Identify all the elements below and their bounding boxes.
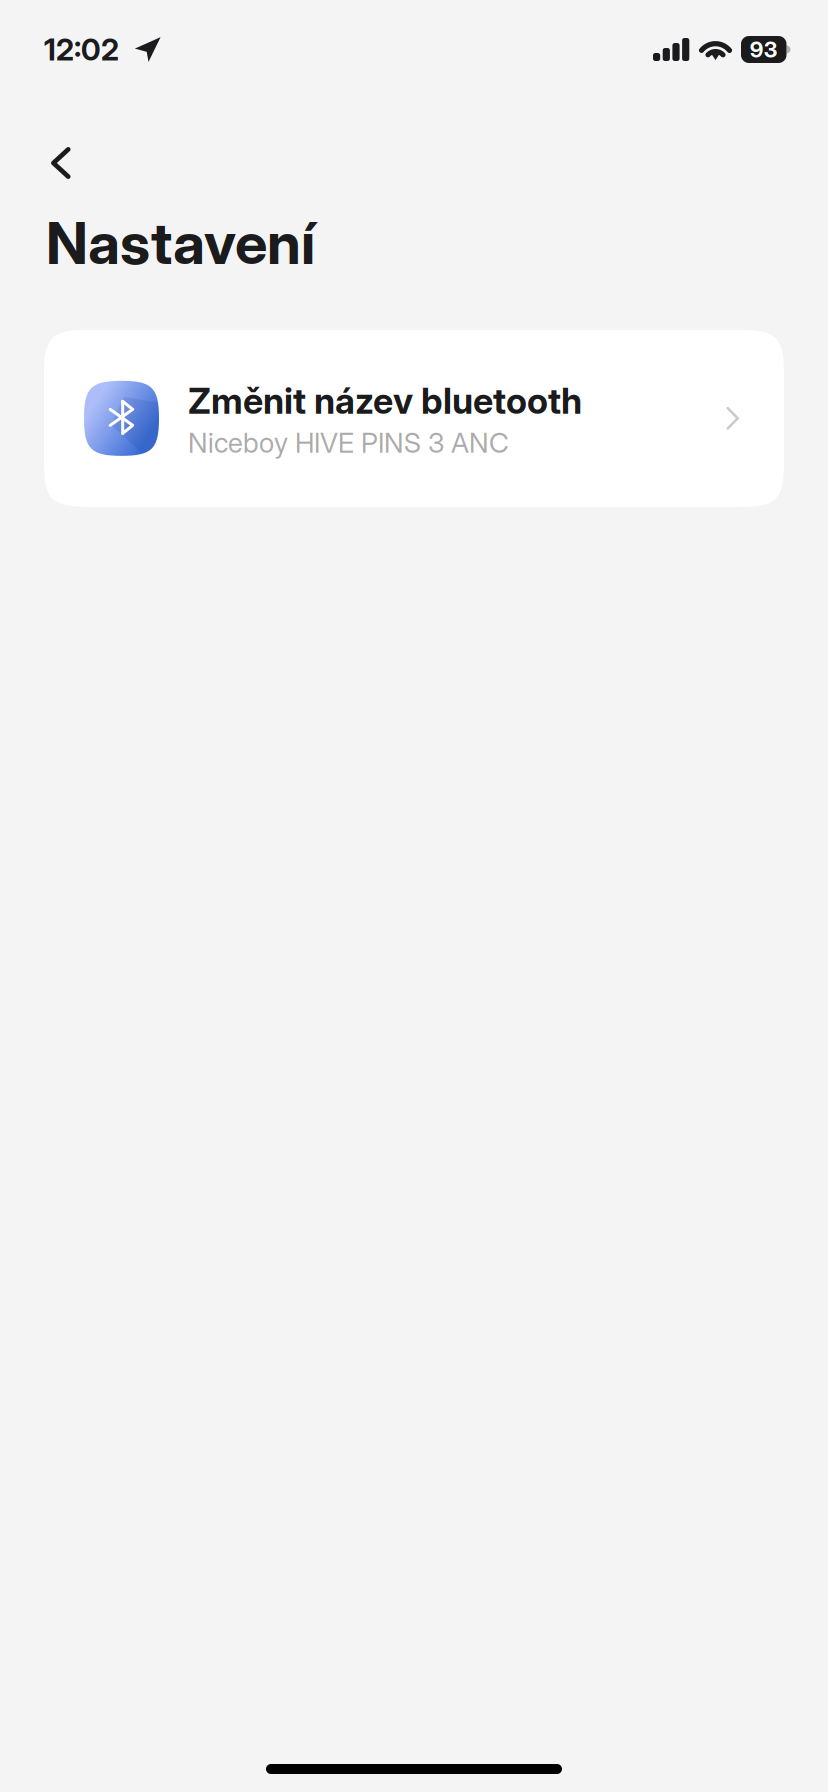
- staticText: 12:02: [44, 31, 119, 68]
- staticText: 93: [750, 36, 778, 63]
- button[interactable]: Back: [0, 129, 98, 197]
- staticText: Nastavení: [46, 208, 315, 278]
- staticText: Změnit název bluetooth: [188, 379, 582, 422]
- staticText: Niceboy HIVE PINS 3 ANC: [188, 426, 509, 459]
- button[interactable]: Změnit název bluetooth: [44, 330, 784, 507]
